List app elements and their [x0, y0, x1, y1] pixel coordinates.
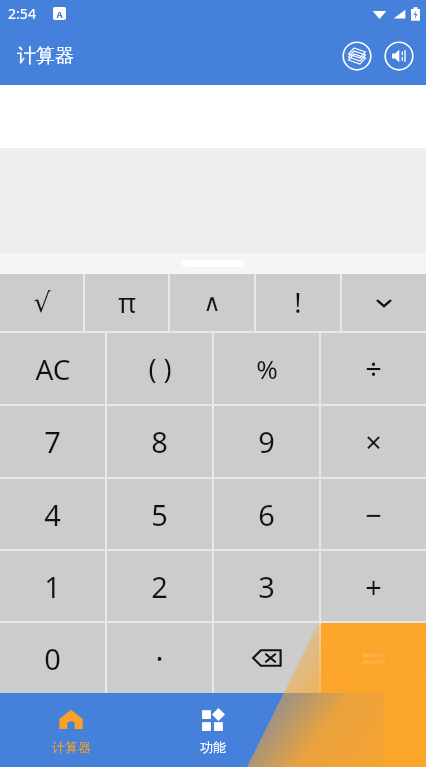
- button[interactable]: +: [321, 551, 426, 621]
- button[interactable]: √: [0, 274, 83, 331]
- staticText: ·: [155, 638, 164, 679]
- button[interactable]: More functions: [342, 274, 426, 331]
- button[interactable]: ( ): [107, 333, 212, 404]
- button[interactable]: 0: [0, 623, 105, 693]
- staticText: 2:54: [8, 4, 36, 23]
- button[interactable]: %: [214, 333, 319, 404]
- button[interactable]: 7: [0, 406, 105, 477]
- button[interactable]: π: [85, 274, 168, 331]
- staticText: ×: [365, 422, 382, 461]
- button[interactable]: History: [338, 37, 376, 75]
- button[interactable]: ×: [321, 406, 426, 477]
- staticText: 3: [258, 567, 275, 606]
- staticText: 8: [151, 422, 168, 461]
- staticText: ( ): [148, 350, 172, 387]
- staticText: 4: [44, 495, 61, 534]
- button[interactable]: Sound: [380, 37, 418, 75]
- button[interactable]: 4: [0, 479, 105, 549]
- staticText: 9: [258, 422, 275, 461]
- staticText: 计算器: [17, 44, 74, 68]
- button[interactable]: 2: [107, 551, 212, 621]
- button[interactable]: ·: [107, 623, 212, 693]
- staticText: ∧: [203, 289, 221, 317]
- staticText: ÷: [365, 349, 382, 388]
- button[interactable]: ∧: [170, 274, 254, 331]
- staticText: 计算器: [52, 739, 91, 755]
- staticText: +: [365, 567, 382, 606]
- button[interactable]: 3: [214, 551, 319, 621]
- button[interactable]: 计算器: [0, 693, 142, 767]
- staticText: %: [256, 351, 278, 386]
- button[interactable]: 6: [214, 479, 319, 549]
- button[interactable]: AC: [0, 333, 105, 404]
- staticText: AC: [35, 350, 71, 388]
- button[interactable]: 9: [214, 406, 319, 477]
- staticText: π: [118, 284, 136, 321]
- staticText: 2: [151, 567, 168, 606]
- button[interactable]: −: [321, 479, 426, 549]
- button[interactable]: !: [256, 274, 340, 331]
- staticText: 5: [151, 495, 168, 534]
- staticText: 0: [44, 639, 61, 678]
- button[interactable]: ÷: [321, 333, 426, 404]
- staticText: 6: [258, 495, 275, 534]
- staticText: 7: [44, 422, 61, 461]
- staticText: !: [294, 284, 302, 321]
- staticText: −: [365, 495, 382, 534]
- button[interactable]: 功能: [142, 693, 284, 767]
- button[interactable]: Delete: [214, 623, 319, 693]
- staticText: 1: [44, 567, 61, 606]
- button[interactable]: 8: [107, 406, 212, 477]
- staticText: 功能: [200, 739, 226, 755]
- button[interactable]: 1: [0, 551, 105, 621]
- button[interactable]: 5: [107, 479, 212, 549]
- button[interactable]: [321, 623, 426, 693]
- staticText: A: [56, 8, 63, 20]
- staticText: √: [33, 287, 51, 318]
